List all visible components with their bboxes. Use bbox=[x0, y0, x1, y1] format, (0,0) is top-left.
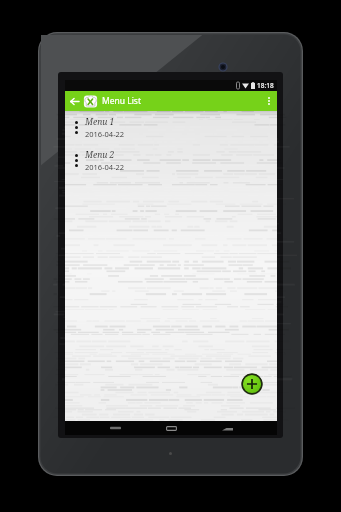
staticText: Menu 1 bbox=[85, 116, 115, 128]
staticText: Menu 2 bbox=[85, 149, 115, 161]
staticText: Menu List bbox=[102, 95, 142, 107]
button[interactable]: Menu 2 bbox=[65, 147, 277, 173]
button[interactable]: Navigate up bbox=[65, 91, 83, 111]
button[interactable]: More options bbox=[261, 91, 277, 111]
staticText: 2016-04-22 bbox=[85, 162, 125, 172]
button[interactable]: Menu 1 bbox=[65, 114, 277, 140]
staticText: 18:18 bbox=[257, 81, 274, 90]
button[interactable]: Add menu bbox=[241, 373, 263, 395]
staticText: 2016-04-22 bbox=[85, 129, 125, 139]
button[interactable]: Recent apps bbox=[216, 421, 238, 435]
button[interactable]: Home bbox=[160, 421, 182, 435]
button[interactable]: Back bbox=[104, 421, 126, 435]
